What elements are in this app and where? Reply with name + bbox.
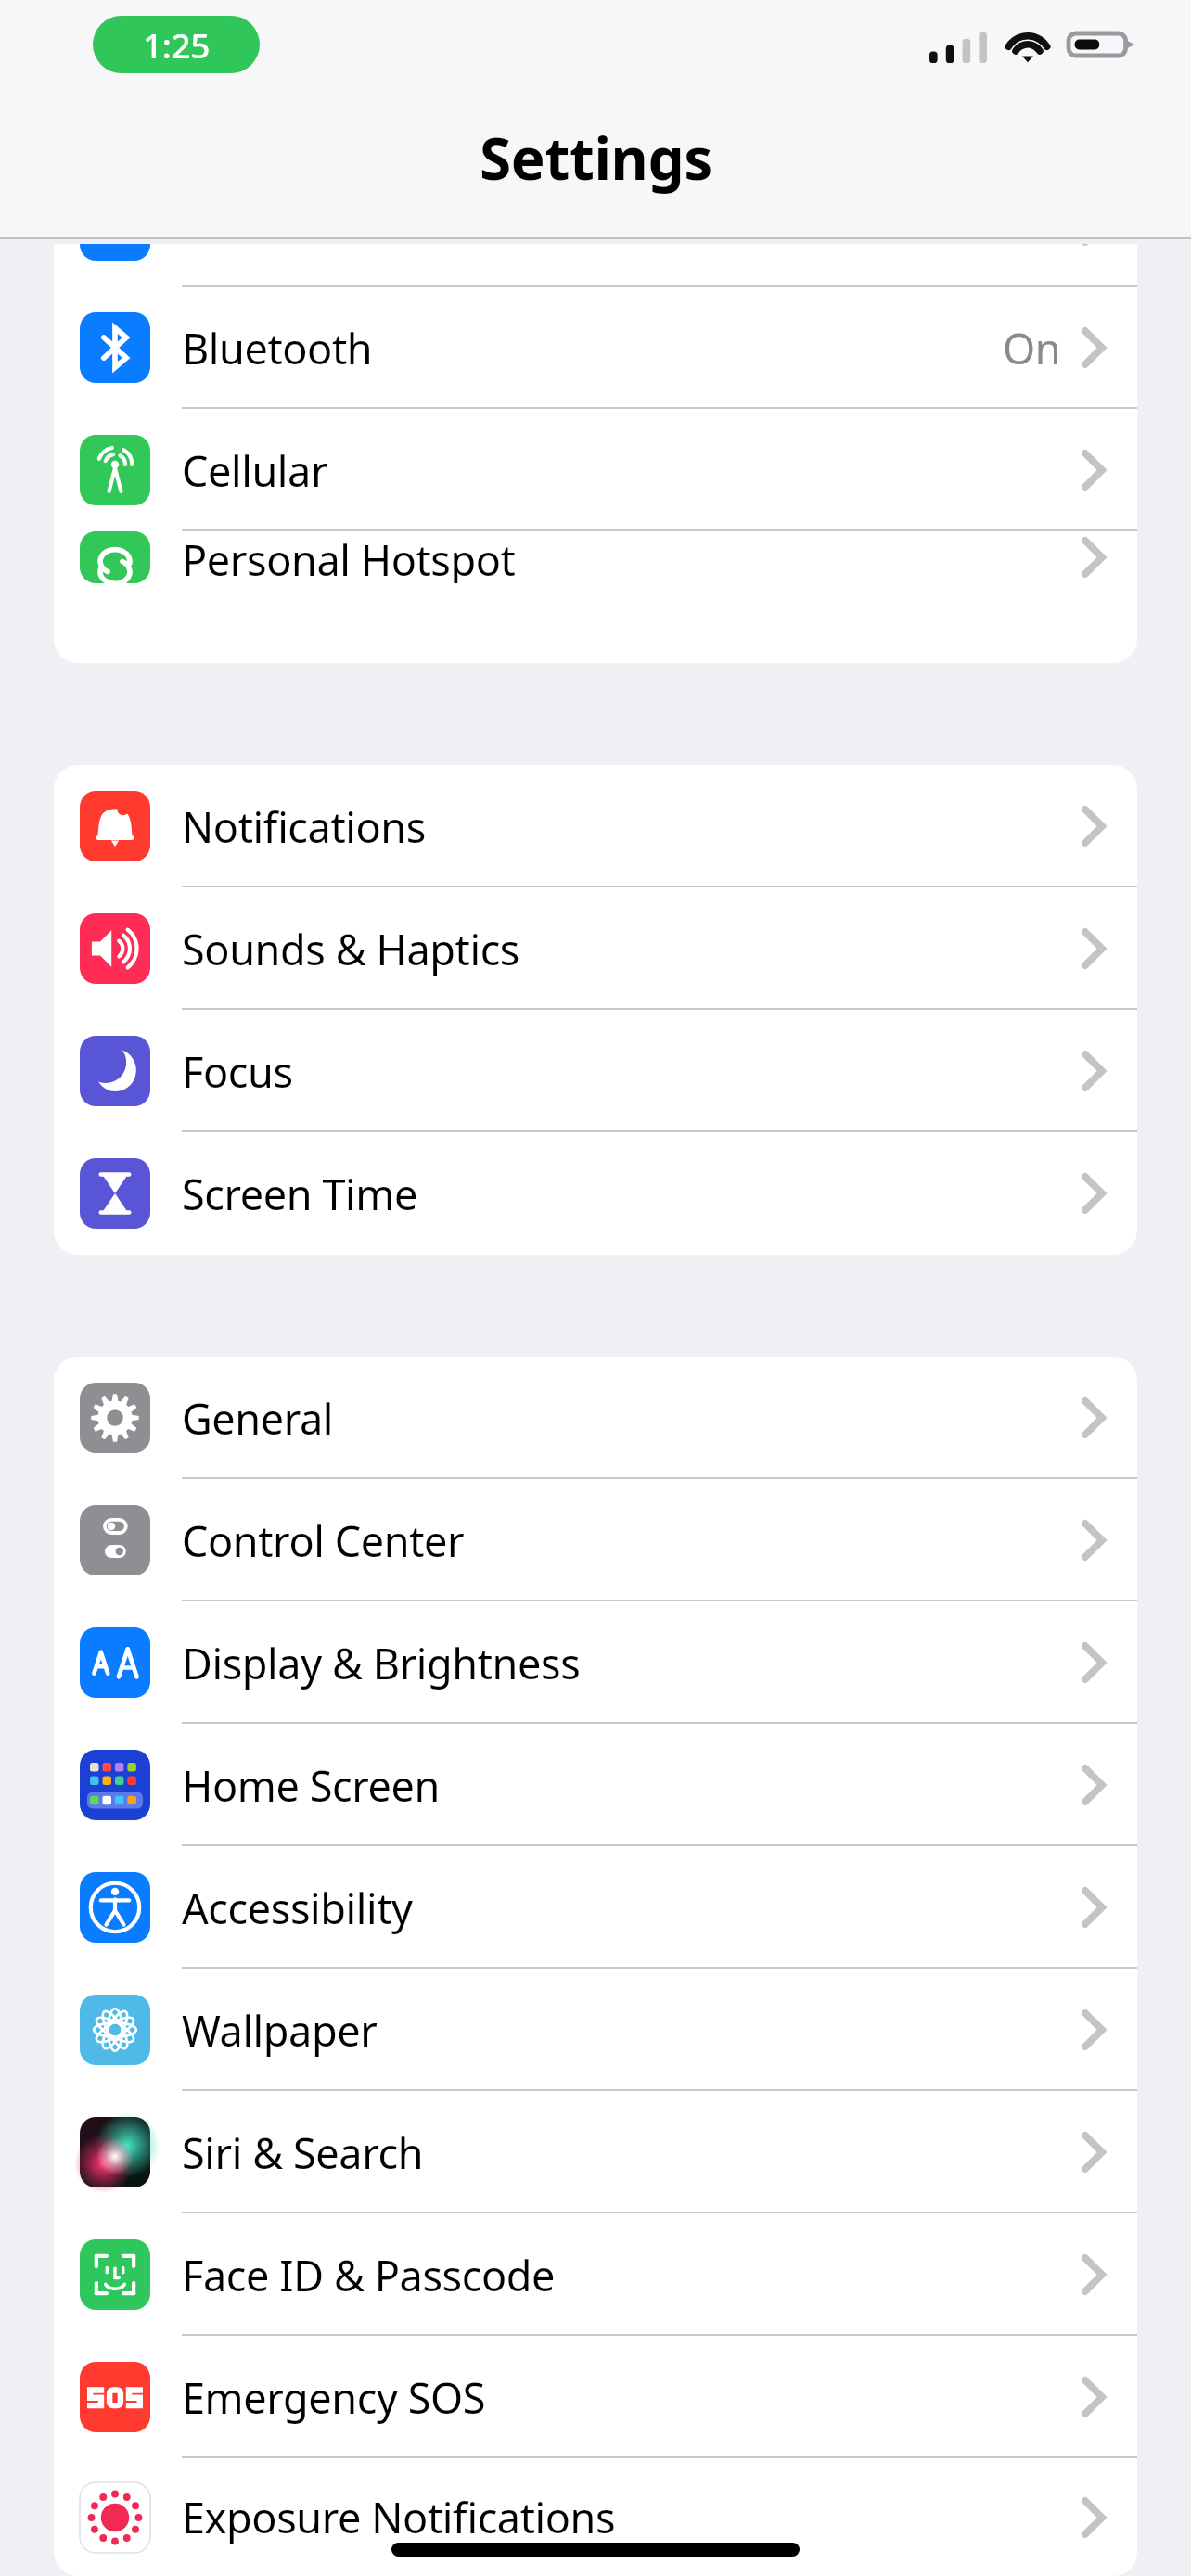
button[interactable]: Face ID & Passcode	[54, 2213, 1137, 2336]
button[interactable]: Cellular	[54, 409, 1137, 531]
button[interactable]: Exposure Notifications	[54, 2458, 1137, 2576]
staticText: On	[1003, 320, 1061, 376]
staticText: Settings	[480, 119, 712, 197]
button[interactable]: Siri & Search	[54, 2091, 1137, 2213]
staticText: Siri & Search	[182, 2124, 424, 2181]
staticText: Personal Hotspot	[182, 531, 516, 583]
button[interactable]: Control Center	[54, 1479, 1137, 1601]
staticText: Screen Time	[182, 1166, 417, 1222]
staticText: Home Screen	[182, 1757, 440, 1814]
staticText: Cellular	[182, 442, 328, 499]
staticText: Accessibility	[182, 1880, 413, 1936]
button[interactable]: Screen Time	[54, 1132, 1137, 1255]
staticText: Sounds & Haptics	[182, 921, 519, 977]
staticText: Focus	[182, 1043, 293, 1100]
button[interactable]: Wallpaper	[54, 1969, 1137, 2091]
button[interactable]: Accessibility	[54, 1846, 1137, 1969]
staticText: Emergency SOS	[182, 2369, 486, 2426]
staticText: General	[182, 1390, 334, 1447]
button[interactable]: Focus	[54, 1010, 1137, 1132]
button[interactable]: Sounds & Haptics	[54, 887, 1137, 1010]
staticText: Wallpaper	[182, 2002, 378, 2059]
button[interactable]: Emergency SOS	[54, 2336, 1137, 2458]
button[interactable]: Personal Hotspot	[54, 531, 1137, 583]
button[interactable]: Home Screen	[54, 1724, 1137, 1846]
button[interactable]: Notifications	[54, 765, 1137, 887]
button[interactable]: Bluetooth	[54, 287, 1137, 409]
button[interactable]: Wi-Fi	[54, 244, 1137, 287]
staticText: Face ID & Passcode	[182, 2247, 555, 2303]
staticText: Control Center	[182, 1512, 465, 1569]
staticText: 1:25	[143, 21, 210, 68]
staticText: Exposure Notifications	[182, 2489, 616, 2545]
button[interactable]: Display & Brightness	[54, 1601, 1137, 1724]
button[interactable]: General	[54, 1357, 1137, 1479]
staticText: Notifications	[182, 798, 426, 855]
staticText: Display & Brightness	[182, 1635, 581, 1691]
staticText: Bluetooth	[182, 320, 373, 376]
